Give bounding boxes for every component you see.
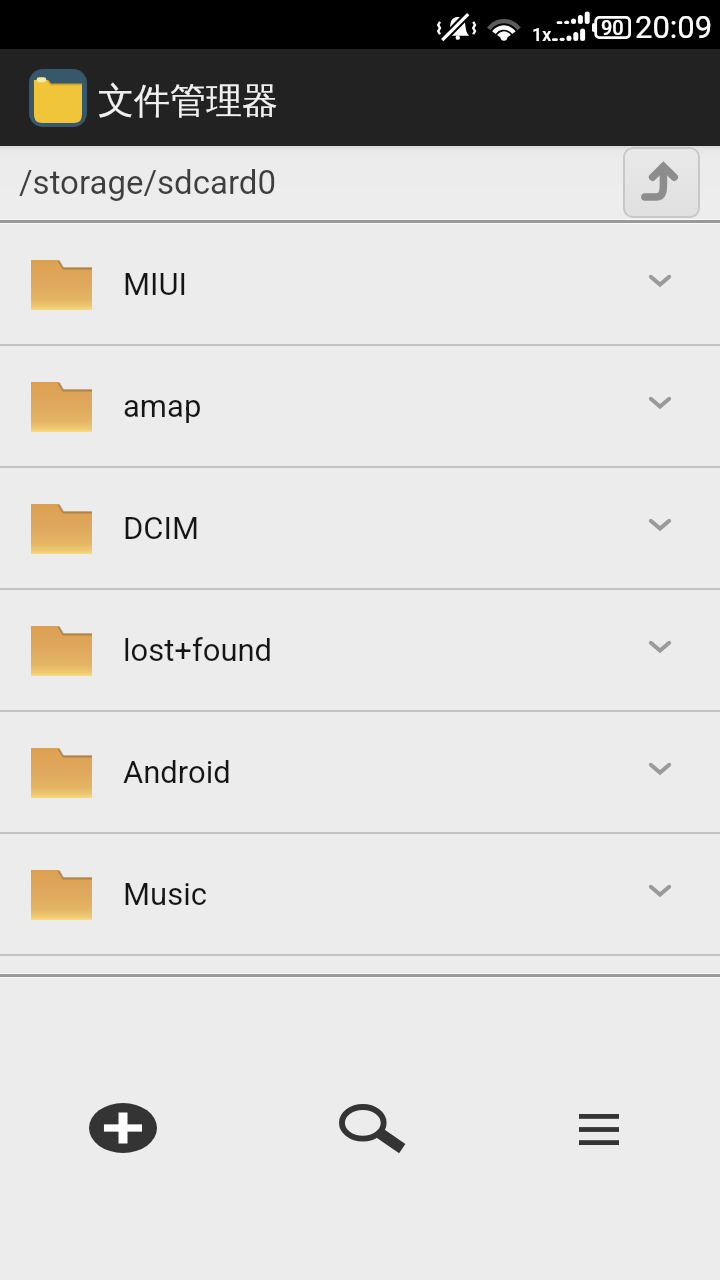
button[interactable]: New — [69, 1083, 177, 1173]
staticText: lost+found — [123, 632, 273, 668]
staticText: MIUI — [123, 266, 188, 302]
staticText: /storage/sdcard0 — [19, 163, 276, 202]
button[interactable]: Search — [319, 1084, 427, 1171]
staticText: 文件管理器 — [98, 78, 278, 123]
button[interactable]: MIUI — [0, 224, 720, 344]
button[interactable]: Music — [0, 834, 720, 954]
staticText: amap — [123, 388, 202, 424]
staticText: 20:09 — [635, 9, 713, 45]
staticText: Android — [123, 754, 231, 790]
button[interactable]: lost+found — [0, 590, 720, 710]
button[interactable]: amap — [0, 346, 720, 466]
staticText: DCIM — [123, 510, 200, 546]
button[interactable]: Android — [0, 712, 720, 832]
button[interactable]: Menu — [545, 1089, 653, 1170]
staticText: Music — [123, 876, 207, 912]
staticText: 90 — [601, 16, 624, 39]
button[interactable]: Up one level — [623, 147, 700, 218]
button[interactable]: DCIM — [0, 468, 720, 588]
staticText: 1x — [532, 24, 552, 45]
